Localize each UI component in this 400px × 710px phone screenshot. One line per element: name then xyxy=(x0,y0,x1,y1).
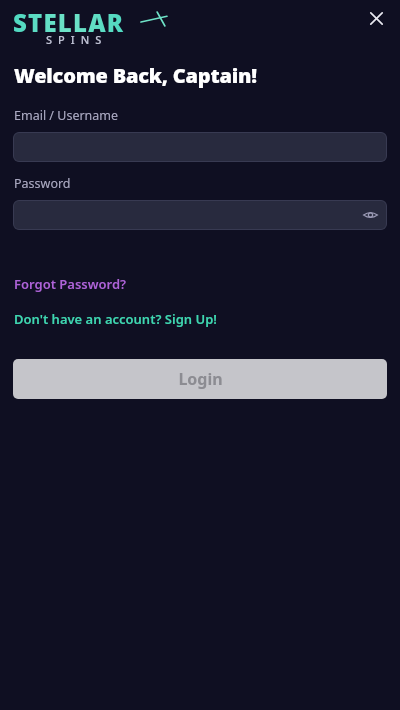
staticText: Password xyxy=(14,175,71,192)
button[interactable]: Show password xyxy=(13,200,387,230)
button[interactable]: Don't have an account? Sign Up! xyxy=(13,309,218,329)
button[interactable]: Login xyxy=(13,359,387,399)
staticText: SPINS xyxy=(46,32,108,47)
button[interactable] xyxy=(13,132,387,162)
button[interactable]: Close xyxy=(361,3,391,33)
staticText: Email / Username xyxy=(14,107,119,124)
staticText: Don't have an account? Sign Up! xyxy=(14,310,217,328)
staticText: Forgot Password? xyxy=(14,275,127,293)
staticText: Login xyxy=(178,368,223,390)
staticText: STELLAR xyxy=(13,6,125,39)
button[interactable]: Show password xyxy=(357,202,383,228)
staticText: Welcome Back, Captain! xyxy=(14,62,257,89)
button[interactable]: Forgot Password? xyxy=(13,274,128,294)
